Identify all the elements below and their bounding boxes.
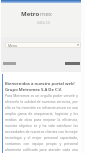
staticText: Menu — [8, 43, 18, 48]
staticText: mex — [40, 10, 53, 18]
staticText: Bienvenidos a nuestro portal web! Grupo … — [5, 81, 75, 92]
button[interactable]: Menu — [5, 42, 81, 48]
staticText: Metro — [21, 10, 40, 18]
staticText: S.A De C.V. — [37, 21, 51, 25]
staticText: Para Metromex es un orgullo poder servir… — [5, 93, 78, 153]
other: Open menu — [77, 44, 79, 46]
